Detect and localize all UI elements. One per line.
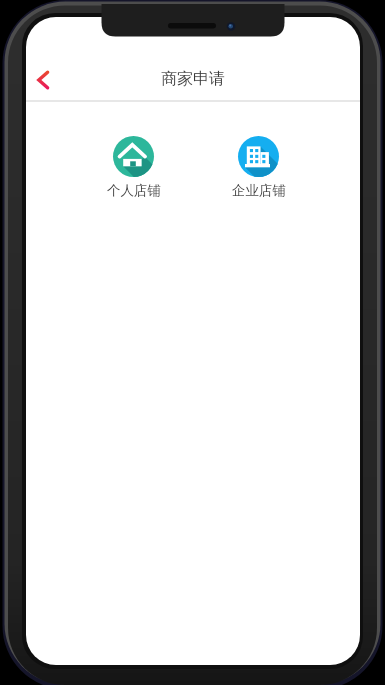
staticText: 商家申请 [161,69,225,89]
button[interactable] [26,57,70,101]
button[interactable]: 个人店铺 [102,136,165,199]
button[interactable]: 企业店铺 [227,136,290,199]
staticText: 个人店铺 [107,182,161,199]
staticText: 企业店铺 [232,182,286,199]
